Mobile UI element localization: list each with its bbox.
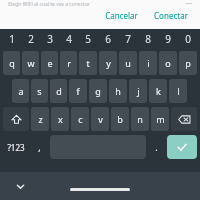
button[interactable]: j	[129, 79, 147, 103]
button[interactable]: 9	[158, 29, 178, 49]
staticText: o	[165, 57, 171, 69]
staticText: v	[98, 113, 103, 125]
button[interactable]: 5	[78, 29, 98, 49]
staticText: e	[47, 57, 53, 69]
button[interactable]: s	[31, 79, 48, 103]
staticText: l	[177, 85, 180, 97]
staticText: .	[155, 141, 158, 153]
button[interactable]: z	[31, 107, 49, 131]
button[interactable]: c	[71, 107, 89, 131]
staticText: s	[37, 85, 42, 97]
staticText: 9	[165, 32, 171, 46]
staticText: 7	[125, 32, 131, 46]
staticText: i	[147, 57, 150, 69]
staticText: ?123	[7, 142, 25, 153]
staticText: ,	[38, 141, 41, 153]
staticText: 0	[185, 32, 191, 46]
button[interactable]: .	[148, 135, 165, 159]
button[interactable]: i	[139, 51, 157, 75]
staticText: p	[185, 57, 191, 69]
staticText: z	[38, 113, 43, 125]
staticText: Elegir WiFi al cual te vas a conectar	[8, 1, 90, 8]
button[interactable]: f	[69, 79, 87, 103]
button[interactable]: 7	[118, 29, 138, 49]
staticText: c	[78, 113, 83, 125]
button[interactable]: Hide keyboard	[12, 178, 28, 194]
staticText: f	[76, 85, 80, 97]
button[interactable]: p	[179, 51, 197, 75]
staticText: u	[125, 57, 131, 69]
staticText: t	[86, 57, 90, 69]
button[interactable]: a	[12, 79, 29, 103]
staticText: 8	[145, 32, 151, 46]
staticText: j	[137, 85, 140, 97]
button[interactable]: 8	[138, 29, 158, 49]
button[interactable]: d	[50, 79, 67, 103]
button[interactable]: ,	[31, 135, 48, 159]
staticText: k	[156, 85, 161, 97]
button[interactable]: 3	[40, 29, 59, 49]
button[interactable]: e	[41, 51, 58, 75]
staticText: y	[106, 57, 111, 69]
button[interactable]: 4	[59, 29, 78, 49]
button[interactable]: o	[159, 51, 177, 75]
staticText: 3	[47, 32, 53, 46]
staticText: q	[9, 57, 15, 69]
button[interactable]: v	[91, 107, 109, 131]
staticText: Cancelar	[105, 10, 138, 21]
button[interactable]: Enter	[167, 135, 197, 159]
button[interactable]: k	[149, 79, 167, 103]
staticText: g	[95, 85, 101, 97]
staticText: b	[117, 113, 123, 125]
staticText: h	[115, 85, 121, 97]
button[interactable]: Cancelar	[99, 7, 144, 24]
staticText: a	[18, 85, 24, 97]
staticText: 1	[9, 32, 15, 46]
button[interactable]: 1	[2, 29, 21, 49]
staticText: d	[56, 85, 62, 97]
staticText: 4	[66, 32, 72, 46]
button[interactable]: y	[99, 51, 117, 75]
button[interactable]: Conectar	[148, 7, 194, 24]
staticText: x	[58, 113, 63, 125]
button[interactable]: l	[169, 79, 187, 103]
button[interactable]: h	[109, 79, 127, 103]
button[interactable]: Shift	[3, 107, 29, 131]
staticText: m	[156, 113, 165, 125]
button[interactable]: n	[131, 107, 149, 131]
button[interactable]: 0	[178, 29, 198, 49]
button[interactable]: ?123	[3, 135, 29, 159]
staticText: 2	[28, 32, 34, 46]
staticText: r	[67, 57, 71, 69]
button[interactable]: g	[89, 79, 107, 103]
button[interactable]: Home	[70, 188, 130, 191]
staticText: w	[27, 57, 35, 69]
staticText: n	[137, 113, 143, 125]
staticText: 5	[85, 32, 91, 46]
button[interactable]: 2	[21, 29, 40, 49]
button[interactable]: t	[79, 51, 97, 75]
button[interactable]: 6	[98, 29, 118, 49]
staticText: Conectar	[154, 10, 188, 21]
button[interactable]: m	[151, 107, 169, 131]
button[interactable]: b	[111, 107, 129, 131]
button[interactable]: x	[51, 107, 69, 131]
button[interactable]: q	[3, 51, 20, 75]
button[interactable]: Backspace	[171, 107, 197, 131]
button[interactable]: u	[119, 51, 137, 75]
button[interactable]: w	[22, 51, 39, 75]
button[interactable]: r	[60, 51, 77, 75]
staticText: 6	[105, 32, 111, 46]
